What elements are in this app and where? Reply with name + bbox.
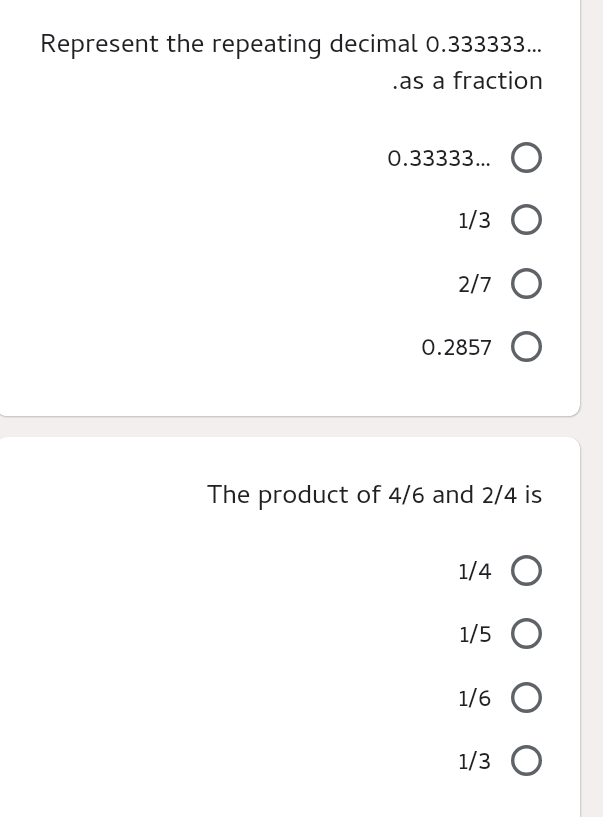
staticText: 0.33333… <box>387 139 492 183</box>
staticText: 1/6 <box>459 679 492 723</box>
button[interactable]: 1/3 <box>0 729 580 792</box>
staticText: The product of 4/6 and 2/4 is <box>0 476 543 520</box>
staticText: .as a fraction <box>0 62 543 106</box>
button[interactable]: 1/5 <box>0 602 580 665</box>
other: Select 1/5 <box>511 618 542 649</box>
button[interactable]: 1/3 <box>0 188 580 251</box>
other: Select 0.33333… <box>511 142 542 173</box>
other: Select 1/6 <box>511 682 542 713</box>
staticText: 1/4 <box>459 552 492 596</box>
staticText: 1/3 <box>459 201 492 245</box>
button[interactable]: 0.2857 <box>0 315 580 378</box>
other: Select 1/3 <box>511 745 542 776</box>
button[interactable]: 0.33333… <box>0 126 580 189</box>
staticText: 0.2857 <box>421 328 492 372</box>
other: Select 1/3 <box>511 204 542 235</box>
staticText: Represent the repeating decimal 0.333333… <box>0 25 543 69</box>
button[interactable]: 1/4 <box>0 539 580 602</box>
other: Select 1/4 <box>511 555 542 586</box>
button[interactable]: 2/7 <box>0 252 580 315</box>
staticText: 2/7 <box>458 265 492 309</box>
other: Select 0.2857 <box>511 331 542 362</box>
staticText: 1/3 <box>459 742 492 786</box>
other: Select 2/7 <box>511 268 542 299</box>
staticText: 1/5 <box>460 615 492 659</box>
button[interactable]: 1/6 <box>0 666 580 729</box>
